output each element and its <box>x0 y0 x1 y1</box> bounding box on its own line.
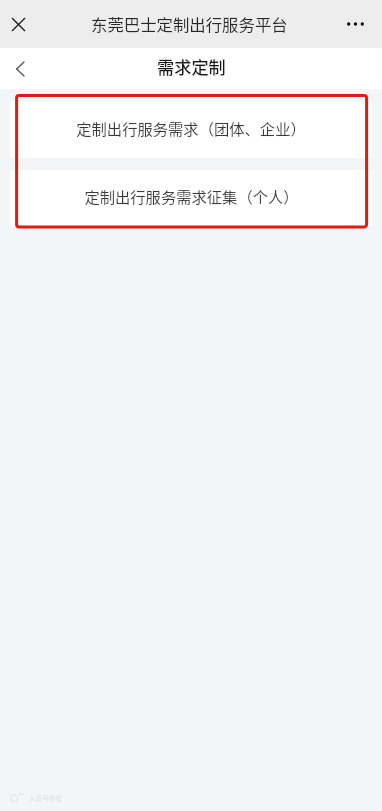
staticText: 东莞巴士定制出行服务平台 <box>91 12 288 36</box>
button[interactable]: 定制出行服务需求征集（个人） <box>10 170 372 226</box>
staticText: 入驻号作者 <box>29 793 62 803</box>
button[interactable]: Back <box>8 57 32 81</box>
button[interactable]: More options <box>341 10 369 38</box>
staticText: 需求定制 <box>157 54 226 79</box>
button[interactable]: 定制出行服务需求（团体、企业） <box>10 101 372 158</box>
staticText: 定制出行服务需求征集（个人） <box>84 185 299 207</box>
button[interactable]: Close <box>6 12 30 36</box>
staticText: 定制出行服务需求（团体、企业） <box>76 117 306 139</box>
